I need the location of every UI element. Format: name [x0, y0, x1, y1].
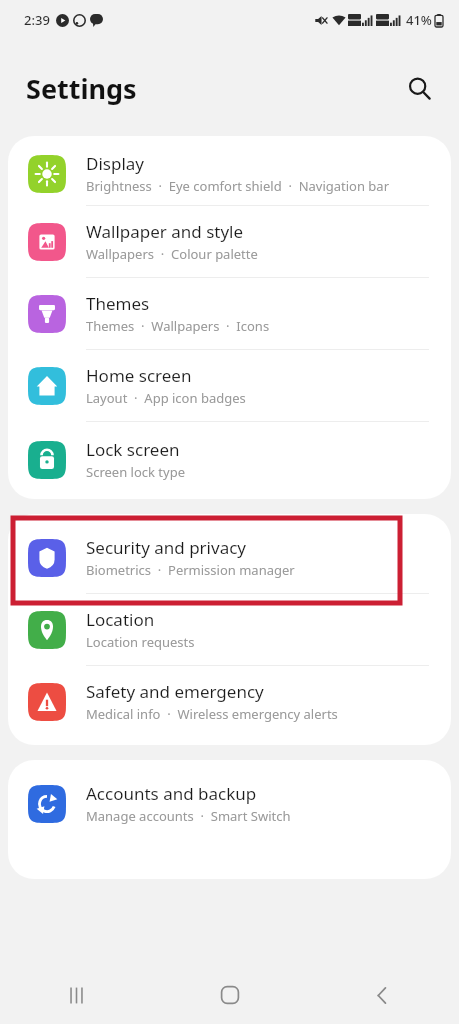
button[interactable]: Accounts and backup — [8, 768, 451, 839]
staticText: Display — [86, 152, 144, 175]
button[interactable]: Safety and emergency — [8, 666, 451, 737]
staticText: Themes — [86, 292, 150, 315]
staticText: Screen lock type — [86, 463, 185, 481]
staticText: Safety and emergency — [86, 680, 264, 703]
button[interactable]: Back — [306, 966, 459, 1024]
staticText: Security and privacy — [86, 536, 247, 559]
button[interactable]: Security and privacy — [8, 522, 451, 593]
button[interactable]: Wallpaper and style — [8, 206, 451, 277]
button[interactable]: Location — [8, 594, 451, 665]
button[interactable]: Display — [8, 146, 451, 205]
staticText: Themes · Wallpapers · Icons — [86, 317, 270, 335]
staticText: Accounts and backup — [86, 782, 257, 805]
button[interactable]: Lock screen — [8, 422, 451, 499]
staticText: Lock screen — [86, 438, 180, 461]
staticText: Settings — [26, 70, 137, 107]
button[interactable]: Home — [153, 966, 306, 1024]
staticText: 41% — [406, 11, 432, 29]
staticText: Biometrics · Permission manager — [86, 561, 295, 579]
button[interactable]: Search — [397, 66, 441, 110]
staticText: Home screen — [86, 364, 192, 387]
staticText: Wallpapers · Colour palette — [86, 245, 258, 263]
button[interactable]: Themes — [8, 278, 451, 349]
staticText: Wallpaper and style — [86, 220, 244, 243]
button[interactable]: Recents — [0, 966, 153, 1024]
staticText: Manage accounts · Smart Switch — [86, 807, 291, 825]
staticText: Location — [86, 608, 155, 631]
staticText: Layout · App icon badges — [86, 389, 246, 407]
button[interactable]: Home screen — [8, 350, 451, 421]
staticText: Location requests — [86, 633, 195, 651]
staticText: Medical info · Wireless emergency alerts — [86, 705, 338, 723]
staticText: 2:39 — [24, 11, 50, 29]
staticText: Brightness · Eye comfort shield · Naviga… — [86, 177, 390, 195]
